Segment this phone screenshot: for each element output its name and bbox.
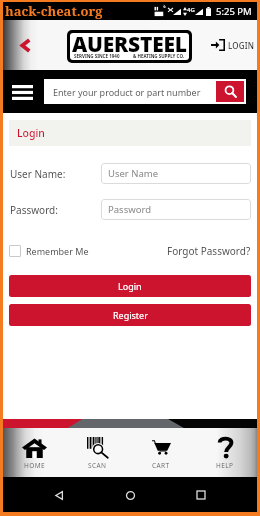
button[interactable]: Home (115, 480, 145, 510)
staticText: SERVING SINCE 1940 (74, 53, 120, 59)
button[interactable]: Enter your product or part number (44, 79, 214, 104)
staticText: HOME (24, 461, 46, 470)
staticText: & HEATING SUPPLY CO. (133, 53, 185, 59)
button[interactable]: User Name (101, 163, 251, 184)
button[interactable]: HOME (3, 428, 66, 477)
staticText: 4G (187, 6, 195, 14)
staticText: Login (118, 280, 142, 292)
staticText: HELP (216, 461, 234, 470)
staticText: AUERSTEEL (72, 33, 187, 57)
staticText: LOGIN (228, 40, 255, 51)
button[interactable]: Remember Me (9, 245, 89, 257)
staticText: Password: (10, 203, 101, 217)
staticText: Login (17, 126, 45, 140)
button[interactable]: Search (216, 81, 244, 102)
button[interactable]: AUERSTEEL (70, 33, 189, 60)
staticText: 5:25 PM (216, 5, 252, 18)
staticText: Enter your product or part number (53, 86, 201, 98)
button[interactable]: SCAN (66, 428, 129, 477)
staticText: Remember Me (26, 245, 89, 257)
staticText: SCAN (88, 461, 107, 470)
button[interactable]: CART (129, 428, 193, 477)
button[interactable]: Password (101, 199, 251, 220)
staticText: Password (108, 203, 151, 216)
staticText: Register (113, 309, 148, 321)
button[interactable]: Forgot Password? (167, 244, 251, 258)
button[interactable]: Recents (186, 480, 216, 510)
button[interactable]: Back (44, 480, 74, 510)
button[interactable]: Register (9, 304, 251, 326)
button[interactable]: Login (9, 275, 251, 297)
button[interactable]: HELP (193, 428, 257, 477)
staticText: CART (152, 461, 170, 470)
button[interactable]: LOGIN (211, 39, 255, 51)
button[interactable]: Menu (9, 79, 35, 105)
button[interactable]: Back (12, 32, 38, 58)
staticText: User Name (108, 167, 159, 180)
staticText: User Name: (10, 167, 101, 181)
staticText: hack-cheat.org (5, 2, 103, 20)
